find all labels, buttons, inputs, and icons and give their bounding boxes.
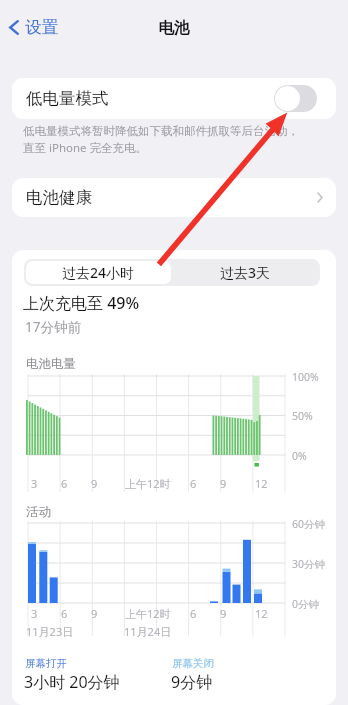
staticText: 上次充电至 49% — [23, 292, 140, 314]
staticText: 上午12时 — [125, 606, 171, 621]
staticText: 过去24小时 — [62, 263, 135, 282]
staticText: 30分钟 — [292, 557, 326, 571]
staticText: 60分钟 — [292, 517, 326, 531]
staticText: 上午12时 — [125, 476, 171, 491]
button[interactable]: 低电量模式开关 — [274, 85, 317, 112]
staticText: 100% — [292, 370, 319, 384]
staticText: 电池电量 — [26, 356, 76, 372]
button[interactable]: 电池健康 — [12, 178, 336, 217]
staticText: 屏幕打开 — [25, 657, 67, 670]
staticText: 11月24日 — [124, 624, 172, 639]
staticText: 9分钟 — [171, 671, 213, 693]
staticText: 3 — [31, 606, 38, 621]
staticText: 9 — [91, 606, 98, 621]
staticText: 6 — [61, 606, 68, 621]
staticText: 设置 — [25, 17, 58, 38]
staticText: 0% — [292, 449, 307, 463]
button[interactable]: 过去3天 — [173, 261, 318, 284]
staticText: 11月23日 — [26, 624, 74, 639]
staticText: 低电量模式 — [26, 88, 109, 109]
staticText: 0分钟 — [292, 597, 320, 611]
staticText: 屏幕关闭 — [172, 657, 214, 670]
button[interactable]: 设置 — [9, 17, 58, 38]
staticText: 50% — [292, 409, 313, 423]
staticText: 活动 — [26, 504, 51, 520]
staticText: 12 — [255, 606, 268, 621]
staticText: 电池 — [0, 18, 348, 38]
staticText: 电池健康 — [26, 187, 92, 208]
staticText: 9 — [220, 606, 227, 621]
staticText: 3小时 20分钟 — [24, 671, 120, 693]
staticText: 3 — [31, 476, 38, 491]
staticText: 低电量模式将暂时降低如下载和邮件抓取等后台活动， 直至 iPhone 完全充电。 — [23, 124, 329, 155]
staticText: 过去3天 — [220, 263, 271, 282]
staticText: 6 — [190, 606, 197, 621]
staticText: 6 — [61, 476, 68, 491]
staticText: 9 — [220, 476, 227, 491]
button[interactable]: 过去24小时 — [26, 261, 171, 284]
staticText: 6 — [190, 476, 197, 491]
staticText: 9 — [91, 476, 98, 491]
staticText: 12 — [255, 476, 268, 491]
staticText: 17分钟前 — [25, 318, 81, 336]
